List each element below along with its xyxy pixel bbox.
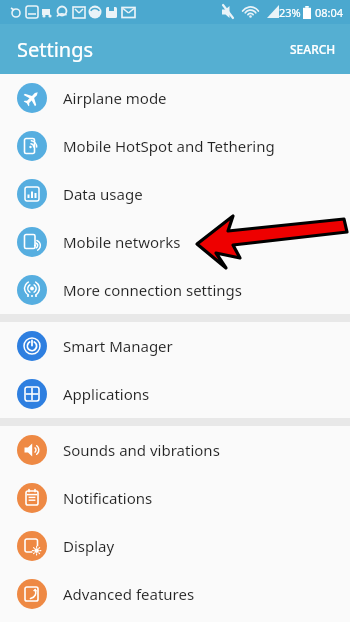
button[interactable]: Airplane mode <box>0 74 350 122</box>
staticText: Applications <box>63 384 150 404</box>
staticText: Notifications <box>63 488 153 508</box>
button[interactable]: Mobile HotSpot and Tethering <box>0 122 350 170</box>
button[interactable]: More connection settings <box>0 266 350 314</box>
button[interactable]: Notifications <box>0 474 350 522</box>
button[interactable]: Advanced features <box>0 570 350 618</box>
staticText: Advanced features <box>63 584 195 604</box>
staticText: Sounds and vibrations <box>63 440 220 460</box>
button[interactable]: Smart Manager <box>0 322 350 370</box>
button[interactable]: Display <box>0 522 350 570</box>
staticText: Mobile networks <box>63 232 181 252</box>
button[interactable]: SEARCH <box>276 29 350 69</box>
staticText: 08:04 <box>315 5 344 20</box>
staticText: Display <box>63 536 115 556</box>
staticText: SEARCH <box>290 41 336 57</box>
staticText: Data usage <box>63 184 143 204</box>
button[interactable]: Mobile networks <box>0 218 350 266</box>
staticText: Mobile HotSpot and Tethering <box>63 136 275 156</box>
staticText: 23% <box>279 5 301 20</box>
button[interactable]: Data usage <box>0 170 350 218</box>
staticText: More connection settings <box>63 280 242 300</box>
button[interactable]: Applications <box>0 370 350 418</box>
staticText: Airplane mode <box>63 88 167 108</box>
staticText: Settings <box>17 36 94 63</box>
button[interactable]: Sounds and vibrations <box>0 426 350 474</box>
staticText: Smart Manager <box>63 336 173 356</box>
